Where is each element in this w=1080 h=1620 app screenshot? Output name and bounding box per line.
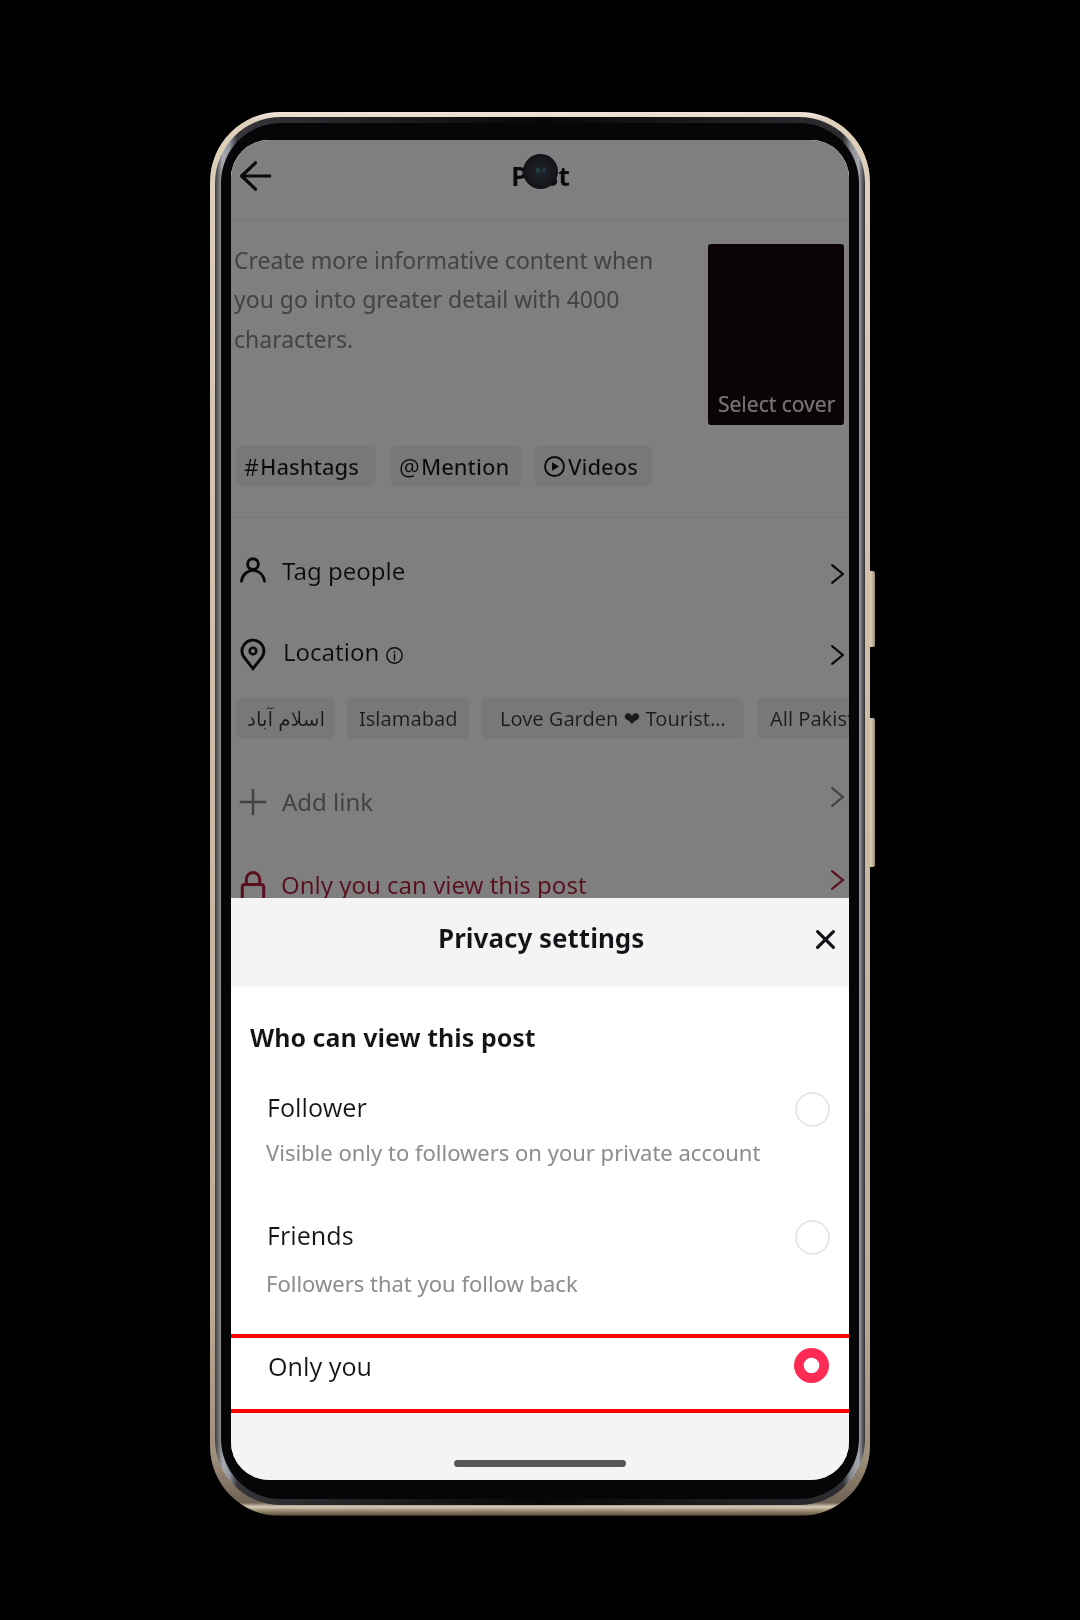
button[interactable]: Close: [802, 916, 848, 962]
button[interactable]: @: [391, 445, 521, 487]
staticText: Post: [511, 157, 570, 194]
staticText: Select cover: [718, 390, 836, 419]
staticText: Islamabad: [359, 705, 458, 732]
button[interactable]: Videos: [535, 445, 652, 487]
button[interactable]: All Pakistan: [757, 697, 849, 739]
staticText: Location: [283, 635, 380, 668]
button[interactable]: اسلام آباد: [236, 697, 335, 739]
staticText: Only you can view this post: [281, 868, 587, 901]
button[interactable]: Only you: [231, 1338, 849, 1409]
staticText: Add link: [282, 785, 374, 818]
button[interactable]: [231, 1206, 849, 1324]
button[interactable]: [231, 850, 849, 922]
staticText: Privacy settings: [438, 920, 645, 955]
staticText: #: [244, 451, 259, 482]
staticText: Who can view this post: [250, 1020, 536, 1054]
staticText: Friends: [267, 1218, 354, 1252]
button[interactable]: [231, 534, 849, 606]
button[interactable]: Back: [235, 155, 277, 197]
staticText: اسلام آباد: [247, 705, 325, 732]
button[interactable]: #: [236, 445, 376, 487]
staticText: Visible only to followers on your privat…: [266, 1137, 761, 1167]
button[interactable]: Select cover: [708, 244, 844, 425]
staticText: All Pakistan: [770, 705, 849, 732]
staticText: @: [399, 451, 420, 482]
button[interactable]: Islamabad: [347, 697, 469, 739]
staticText: Love Garden ❤ Tourist…: [500, 705, 726, 732]
staticText: Follower: [267, 1090, 367, 1124]
staticText: Tag people: [282, 554, 406, 587]
button[interactable]: [231, 618, 849, 690]
staticText: Followers that you follow back: [266, 1268, 578, 1298]
button[interactable]: Love Garden ❤ Tourist…: [481, 697, 744, 739]
staticText: Mention: [421, 451, 510, 481]
button[interactable]: [231, 766, 849, 838]
button[interactable]: About location: [386, 647, 403, 664]
staticText: Videos: [568, 451, 638, 481]
staticText: Hashtags: [260, 451, 359, 481]
button[interactable]: [231, 1078, 849, 1196]
staticText: Only you: [268, 1349, 373, 1383]
staticText: Create more informative content when you…: [234, 244, 664, 355]
